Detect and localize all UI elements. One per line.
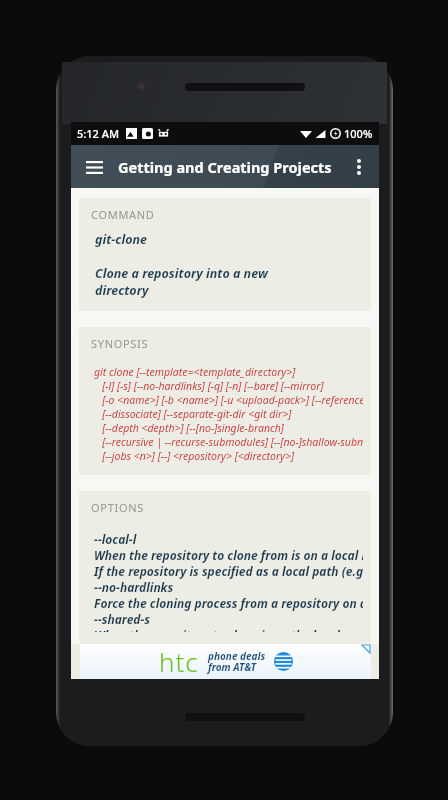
staticText: [--jobs <n>] [--] <repository> [<directo… — [94, 449, 295, 463]
staticText: Getting and Creating Projects — [118, 157, 332, 177]
staticText: [--dissociate] [--separate-git-dir <git … — [94, 407, 292, 421]
staticText: COMMAND — [91, 207, 155, 222]
staticText: If the repository is specified as a loca… — [94, 563, 363, 579]
staticText: OPTIONS — [91, 500, 144, 515]
staticText: [-l] [-s] [--no-hardlinks] [-q] [-n] [--… — [94, 379, 324, 393]
staticText: 100% — [344, 126, 373, 141]
staticText: [--depth <depth>] [--[no-]single-branch] — [94, 421, 284, 435]
staticText: git-clone — [95, 231, 147, 248]
staticText: [--recursive | --recurse-submodules] [--… — [94, 435, 363, 449]
button[interactable]: COMMAND — [79, 198, 371, 311]
button[interactable]: HTC phone deals from AT&T advertisement — [80, 644, 371, 679]
staticText: phone deals from AT&T — [208, 649, 266, 674]
staticText: When the repository to clone is on the l… — [94, 627, 363, 632]
staticText: Clone a repository into a new directory — [95, 265, 268, 299]
staticText: --local-l — [94, 531, 137, 547]
staticText: htc — [159, 644, 199, 679]
staticText: --no-hardlinks — [94, 579, 174, 595]
button[interactable]: OPTIONS — [79, 491, 371, 644]
button[interactable]: More options — [344, 152, 374, 182]
button[interactable]: Open navigation menu — [79, 152, 109, 182]
staticText: [-o <name>] [-b <name>] [-u <upload-pack… — [94, 393, 363, 407]
staticText: 5:12 AM — [77, 126, 120, 141]
staticText: SYNOPSIS — [91, 336, 149, 351]
button[interactable]: SYNOPSIS — [79, 327, 371, 475]
staticText: --shared-s — [94, 611, 151, 627]
staticText: git clone [--template=<template_director… — [94, 365, 296, 379]
staticText: When the repository to clone from is on … — [94, 547, 363, 563]
staticText: Force the cloning process from a reposit… — [94, 595, 363, 611]
